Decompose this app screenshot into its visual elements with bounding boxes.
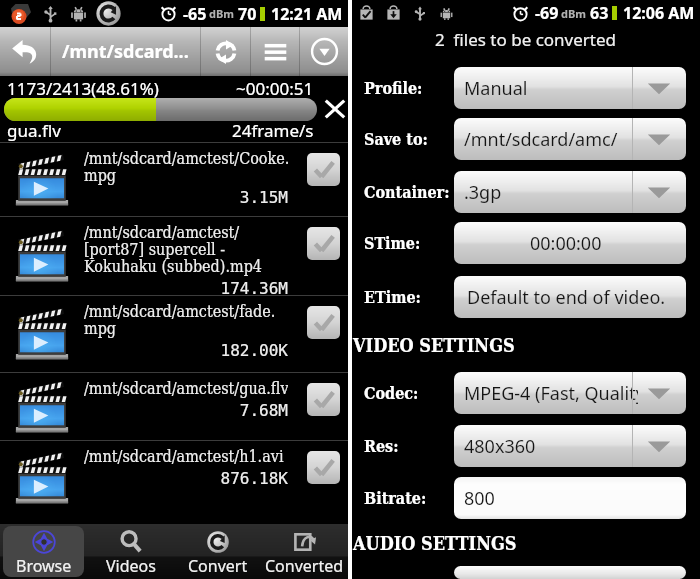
staticText: STime: — [364, 234, 421, 253]
button[interactable]: Refresh — [201, 27, 250, 76]
staticText: Codec: — [364, 384, 419, 403]
staticText: Convert — [188, 555, 248, 577]
button[interactable]: /mnt/sdcard/amctest/gua.flv — [0, 373, 348, 440]
button[interactable]: Select file — [307, 451, 340, 484]
staticText: Videos — [106, 555, 156, 577]
staticText: 12:21 AM — [271, 3, 343, 25]
staticText: 800 — [464, 486, 495, 511]
staticText: 174.36M — [84, 279, 288, 298]
staticText: 70 — [238, 3, 257, 25]
button[interactable]: 800 — [454, 477, 686, 519]
button[interactable]: /mnt/sdcard/amc/ — [454, 118, 686, 160]
button[interactable]: Menu — [251, 27, 299, 76]
staticText: 876.18K — [84, 469, 288, 488]
button[interactable]: /mnt/sdcard/amctest/Cooke. — [0, 143, 348, 216]
staticText: 3.15M — [84, 188, 288, 207]
staticText: Profile: — [364, 79, 423, 98]
button[interactable]: Select file — [307, 306, 340, 339]
button[interactable]: /mnt/sdcard/amctest/ — [0, 217, 348, 295]
staticText: Kokuhaku (subbed).mp4 — [84, 257, 263, 276]
staticText: ETime: — [364, 288, 421, 307]
staticText: Converted — [265, 555, 344, 577]
button[interactable]: 00:00:00 — [454, 222, 686, 264]
staticText: 182.00K — [84, 341, 288, 360]
button[interactable]: Convert — [177, 526, 258, 577]
button[interactable]: Cancel conversion — [322, 96, 348, 122]
button[interactable]: Browse — [3, 526, 84, 577]
staticText: /mnt/sdcard/amctest/ — [84, 223, 240, 242]
button[interactable]: /mnt/sdcard/amctest/fade. — [0, 296, 348, 372]
button[interactable]: .3gp — [454, 171, 686, 213]
staticText: VIDEO SETTINGS — [353, 335, 515, 356]
staticText: /mnt/sdcard/amctest/h1.avi — [84, 447, 284, 466]
staticText: [port87] supercell - — [84, 240, 226, 259]
staticText: Res: — [364, 437, 399, 456]
button[interactable]: Manual — [454, 67, 686, 109]
button[interactable]: Select file — [307, 383, 340, 416]
staticText: dBm — [209, 6, 234, 21]
button[interactable]: /mnt/sdcard/amctest/h1.avi — [0, 441, 348, 514]
staticText: AUDIO SETTINGS — [353, 533, 517, 554]
staticText: gua.flv — [7, 119, 61, 142]
staticText: Save to: — [364, 130, 428, 149]
button[interactable]: Select file — [307, 227, 340, 260]
staticText: 24frame/s — [232, 119, 314, 142]
staticText: Container: — [364, 183, 450, 202]
staticText: .3gp — [464, 180, 502, 205]
staticText: 12:06 AM — [623, 2, 695, 24]
button[interactable]: /mnt/sdcard... — [51, 27, 200, 76]
button[interactable]: Converted — [264, 526, 345, 577]
staticText: 00:00:00 — [530, 231, 602, 256]
button[interactable]: Videos — [90, 526, 171, 577]
staticText: Browse — [16, 555, 72, 577]
button[interactable]: MPEG-4 (Fast, Quality — [454, 372, 686, 414]
staticText: /mnt/sdcard/amctest/fade. — [84, 302, 276, 321]
button[interactable]: 480x360 — [454, 425, 686, 467]
button[interactable]: More options — [300, 27, 348, 76]
staticText: -65 — [183, 3, 207, 25]
staticText: 2 files to be converted — [435, 28, 617, 51]
staticText: 1173/2413(48.61%) — [7, 77, 159, 100]
staticText: 7.68M — [84, 401, 288, 420]
staticText: 480x360 — [464, 434, 536, 459]
button[interactable]: Select file — [307, 153, 340, 186]
staticText: mpg — [84, 166, 117, 185]
staticText: Bitrate: — [364, 489, 427, 508]
button[interactable]: Back — [0, 27, 50, 76]
staticText: ~00:00:51 — [236, 77, 314, 100]
button[interactable]: Default to end of video. — [454, 276, 686, 318]
staticText: -69 — [535, 2, 559, 24]
staticText: mpg — [84, 319, 117, 338]
staticText: Default to end of video. — [467, 285, 666, 310]
staticText: dBm — [561, 6, 586, 21]
staticText: /mnt/sdcard... — [62, 39, 189, 64]
staticText: /mnt/sdcard/amctest/Cooke. — [84, 149, 288, 168]
staticText: MPEG-4 (Fast, Quality — [464, 381, 638, 406]
staticText: /mnt/sdcard/amc/ — [464, 127, 618, 152]
staticText: /mnt/sdcard/amctest/gua.flv — [84, 379, 288, 398]
staticText: 63 — [590, 2, 609, 24]
staticText: Manual — [464, 76, 528, 101]
